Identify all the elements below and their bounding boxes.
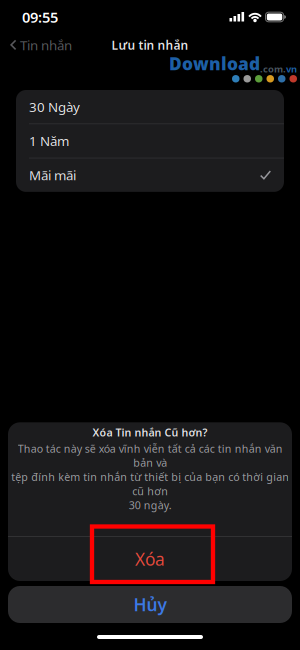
button[interactable]: 1 Năm	[16, 124, 284, 158]
button[interactable]: Mãi mãi	[16, 158, 284, 192]
staticText: 30 Ngày	[29, 98, 80, 116]
staticText: .com.	[260, 63, 286, 75]
staticText: Hủy	[133, 593, 166, 616]
staticText: 09:55	[22, 7, 58, 27]
button[interactable]: 30 Ngày	[16, 90, 284, 124]
staticText: Xóa Tin nhắn Cũ hơn?	[92, 425, 207, 439]
staticText: vn	[286, 63, 297, 75]
staticText: Mãi mãi	[29, 166, 76, 184]
staticText: 1 Năm	[29, 132, 69, 150]
staticText: Download	[169, 52, 260, 75]
button[interactable]: Hủy	[8, 586, 292, 623]
button[interactable]: Xóa	[8, 537, 292, 581]
staticText: Tin nhắn	[20, 36, 72, 54]
button[interactable]: Tin nhắn	[0, 32, 72, 58]
staticText: Lưu tin nhắn	[111, 37, 188, 53]
staticText: Xóa	[135, 547, 165, 570]
staticText: Thao tác này sẽ xóa vĩnh viễn tất cả các…	[11, 441, 289, 512]
